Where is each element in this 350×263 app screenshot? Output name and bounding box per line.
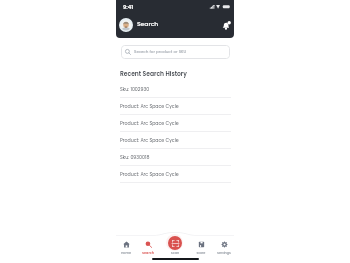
staticText: Product: Arc Space Cycle — [120, 120, 179, 127]
button[interactable]: Store — [190, 241, 212, 255]
button[interactable]: Search — [137, 241, 159, 255]
staticText: Search — [137, 20, 159, 28]
staticText: Sku: 1002930 — [120, 86, 150, 93]
button[interactable]: Home — [115, 241, 137, 255]
staticText: Sku: 0930018 — [120, 154, 150, 161]
button[interactable]: Scan — [168, 236, 182, 250]
button[interactable]: Sku: 0930018 — [120, 149, 231, 166]
staticText: Home — [115, 250, 137, 255]
button[interactable]: Product: Arc Space Cycle — [120, 98, 231, 115]
staticText: Settings — [213, 250, 235, 255]
button[interactable]: Product: Arc Space Cycle — [120, 166, 231, 183]
staticText: Search for product or SKU — [134, 49, 187, 55]
staticText: 9:41 — [123, 3, 134, 10]
button[interactable]: Sku: 1002930 — [120, 81, 231, 98]
staticText: Search — [137, 250, 159, 255]
staticText: Product: Arc Space Cycle — [120, 171, 179, 178]
button[interactable]: Product: Arc Space Cycle — [120, 115, 231, 132]
button[interactable]: Settings — [213, 241, 235, 255]
button[interactable]: Scan — [164, 241, 186, 255]
button[interactable]: Profile — [119, 18, 133, 32]
staticText: Product: Arc Space Cycle — [120, 137, 179, 144]
button[interactable]: Search for product or SKU — [121, 45, 230, 59]
staticText: Product: Arc Space Cycle — [120, 103, 179, 110]
staticText: Store — [190, 250, 212, 255]
button[interactable]: Product: Arc Space Cycle — [120, 132, 231, 149]
button[interactable]: Notifications — [220, 19, 233, 32]
staticText: Recent Search History — [120, 70, 187, 78]
staticText: Scan — [164, 250, 186, 255]
